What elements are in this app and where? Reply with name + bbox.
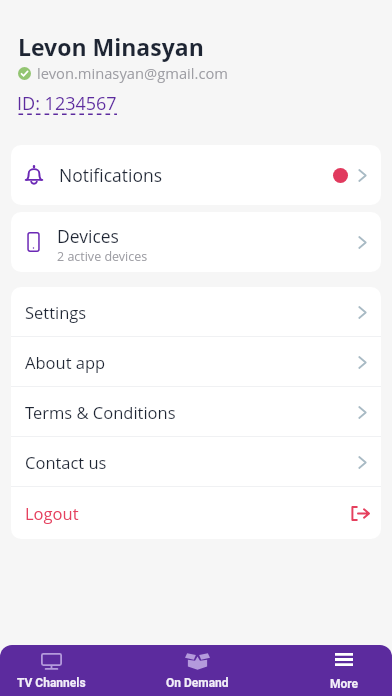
staticText: Logout (25, 502, 79, 524)
staticText: On Demand (166, 676, 229, 690)
staticText: Terms & Conditions (25, 401, 176, 423)
staticText: Contact us (25, 451, 107, 473)
button[interactable]: Contact us (11, 437, 381, 487)
button[interactable]: Settings (11, 287, 381, 337)
button[interactable]: Notifications (11, 145, 381, 205)
staticText: Devices (57, 224, 119, 248)
button[interactable]: ID: 1234567 (17, 91, 117, 116)
staticText: 2 active devices (57, 248, 148, 265)
other: Logout (350, 506, 370, 521)
button[interactable]: On Demand (142, 645, 252, 696)
button[interactable]: Terms & Conditions (11, 387, 381, 437)
button[interactable]: TV Channels (0, 645, 106, 696)
button[interactable]: More (289, 645, 392, 696)
staticText: Notifications (59, 163, 163, 187)
staticText: Settings (25, 301, 87, 323)
staticText: About app (25, 351, 106, 373)
staticText: levon.minasyan@gmail.com (37, 63, 228, 83)
staticText: TV Channels (17, 676, 86, 690)
button[interactable]: About app (11, 337, 381, 387)
staticText: Levon Minasyan (18, 31, 204, 62)
button[interactable]: Devices (11, 212, 381, 272)
staticText: More (330, 677, 359, 691)
button[interactable]: Logout (11, 487, 381, 539)
